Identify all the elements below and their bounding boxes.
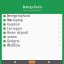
- staticText: Vacation: [7, 23, 20, 26]
- staticText: Wedding: [7, 44, 20, 47]
- staticText: >: [59, 44, 61, 47]
- staticText: Keep your money on track: [22, 10, 41, 11]
- staticText: >: [59, 31, 61, 34]
- staticText: Gadgets: [7, 39, 19, 43]
- staticText: Car repair: [7, 27, 22, 30]
- staticText: >: [59, 23, 61, 26]
- staticText: >: [59, 14, 61, 18]
- staticText: New laptop: [7, 18, 23, 22]
- staticText: Emergency fund: [7, 14, 30, 18]
- staticText: >: [59, 27, 61, 30]
- staticText: >: [59, 18, 61, 22]
- staticText: Home deposit: [7, 31, 28, 34]
- staticText: Tuition: [7, 35, 17, 39]
- staticText: >: [59, 39, 61, 43]
- staticText: >: [59, 35, 61, 39]
- staticText: Savings Goals: [22, 5, 41, 9]
